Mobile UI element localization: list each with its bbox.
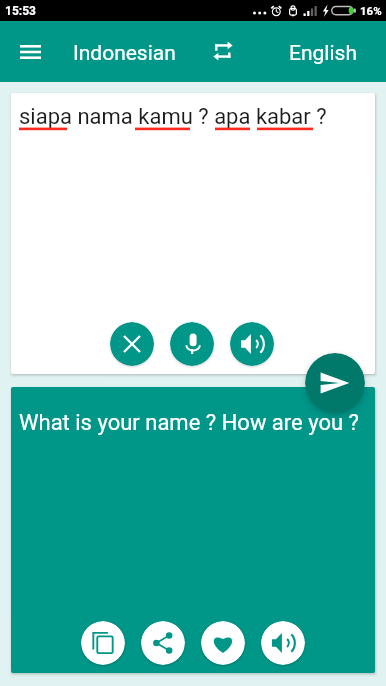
button[interactable]: Share translation (141, 621, 185, 665)
button[interactable]: Clear text (110, 322, 154, 366)
staticText: 15:53 (5, 4, 36, 18)
button[interactable]: Voice input (170, 322, 214, 366)
staticText: English (289, 41, 357, 66)
button[interactable]: Listen to translation (261, 621, 305, 665)
staticText: Indonesian (73, 41, 176, 66)
staticText: siapa nama kamu ? apa kabar ? (19, 104, 327, 130)
button[interactable]: Translate (305, 353, 365, 413)
button[interactable]: Open menu (9, 31, 51, 73)
button[interactable]: Swap languages (201, 30, 245, 74)
button[interactable]: Listen to source (230, 322, 274, 366)
button[interactable]: Copy translation (81, 621, 125, 665)
button[interactable]: Add to favourites (201, 621, 245, 665)
staticText: What is your name ? How are you ? (19, 410, 359, 436)
staticText: 16% (360, 4, 382, 17)
